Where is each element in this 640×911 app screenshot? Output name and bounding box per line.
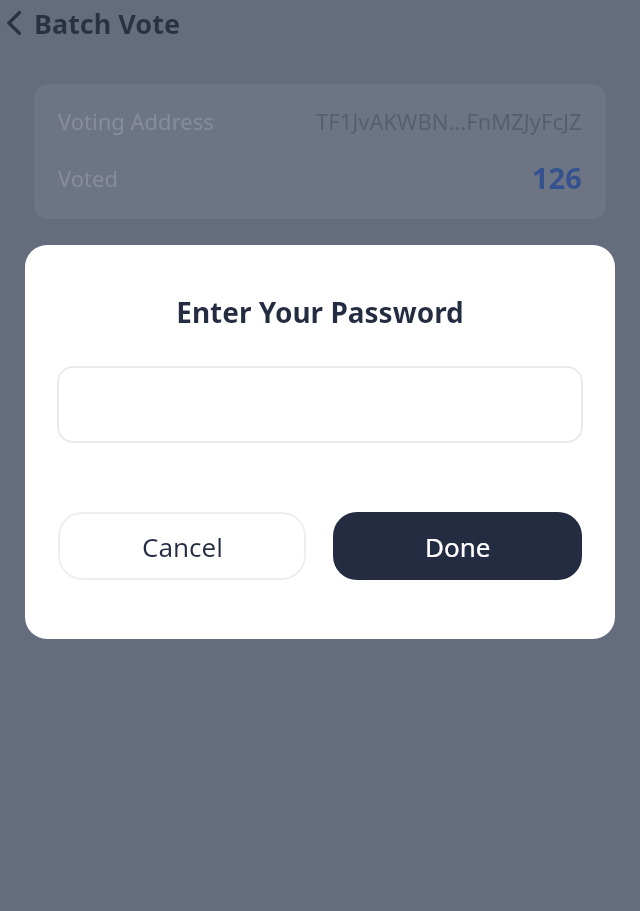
button[interactable]: Cancel <box>58 512 306 580</box>
staticText: Voted <box>58 163 118 193</box>
staticText: Voting Address <box>58 106 214 136</box>
staticText: Cancel <box>142 529 223 564</box>
button[interactable]: Back <box>0 6 34 40</box>
staticText: Enter Your Password <box>25 293 615 331</box>
button[interactable] <box>57 366 583 443</box>
button[interactable]: Done <box>333 512 582 580</box>
staticText: 126 <box>532 158 582 197</box>
staticText: Done <box>425 529 491 564</box>
staticText: Batch Vote <box>34 5 181 42</box>
staticText: TF1JvAKWBN...FnMZJyFcJZ <box>316 106 582 136</box>
